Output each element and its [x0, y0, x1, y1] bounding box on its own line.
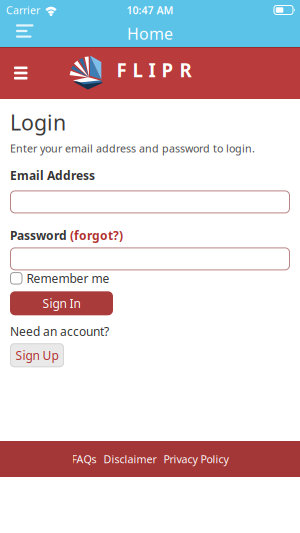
button[interactable]	[0, 27, 33, 40]
button[interactable]: FAQs	[71, 452, 96, 466]
button[interactable]	[0, 66, 27, 79]
staticText: Need an account?	[10, 323, 109, 339]
button[interactable]: Sign Up	[10, 343, 64, 367]
staticText: Carrier	[6, 3, 40, 17]
staticText: Sign Up	[15, 347, 58, 363]
staticText: FAQs	[71, 452, 96, 466]
staticText: Email Address	[10, 167, 95, 183]
staticText: Disclaimer	[103, 452, 156, 466]
button[interactable]: Privacy Policy	[163, 452, 228, 466]
staticText: Login	[10, 108, 66, 136]
staticText: Privacy Policy	[163, 452, 228, 466]
button[interactable]: Remember me	[10, 270, 109, 286]
button[interactable]: Disclaimer	[103, 452, 156, 466]
staticText: 10:47 AM	[126, 3, 173, 17]
staticText: Enter your email address and password to…	[10, 141, 255, 155]
staticText: FLIPR	[116, 58, 191, 82]
staticText: Password	[10, 227, 67, 243]
staticText: Sign In	[42, 295, 80, 311]
staticText: Home	[127, 23, 173, 44]
staticText: (forgot?)	[70, 227, 123, 243]
button[interactable]: Sign In	[10, 291, 113, 315]
button[interactable]: (forgot?)	[70, 227, 123, 243]
staticText: Remember me	[26, 270, 109, 286]
